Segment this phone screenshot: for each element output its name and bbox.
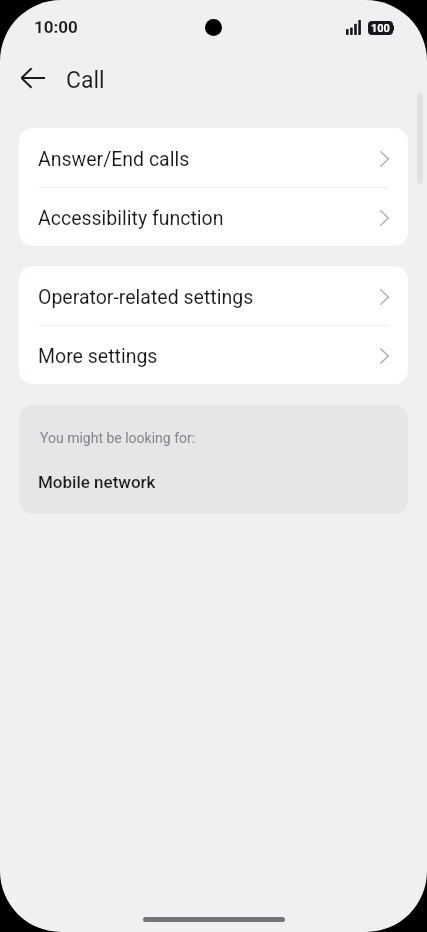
staticText: Mobile network <box>38 472 156 492</box>
button[interactable]: Back <box>11 56 55 100</box>
staticText: Call <box>66 67 105 94</box>
staticText: Operator-related settings <box>38 286 254 309</box>
staticText: 10:00 <box>34 17 78 37</box>
button[interactable]: Answer/End calls <box>19 128 408 187</box>
button[interactable]: Accessibility function <box>19 187 408 246</box>
staticText: Answer/End calls <box>38 148 190 171</box>
button[interactable]: Mobile network <box>19 465 408 495</box>
staticText: More settings <box>38 345 158 368</box>
staticText: 100 <box>371 22 390 35</box>
staticText: You might be looking for: <box>40 430 196 446</box>
button[interactable]: Operator-related settings <box>19 266 408 325</box>
button[interactable]: More settings <box>19 325 408 384</box>
staticText: Accessibility function <box>38 207 224 230</box>
